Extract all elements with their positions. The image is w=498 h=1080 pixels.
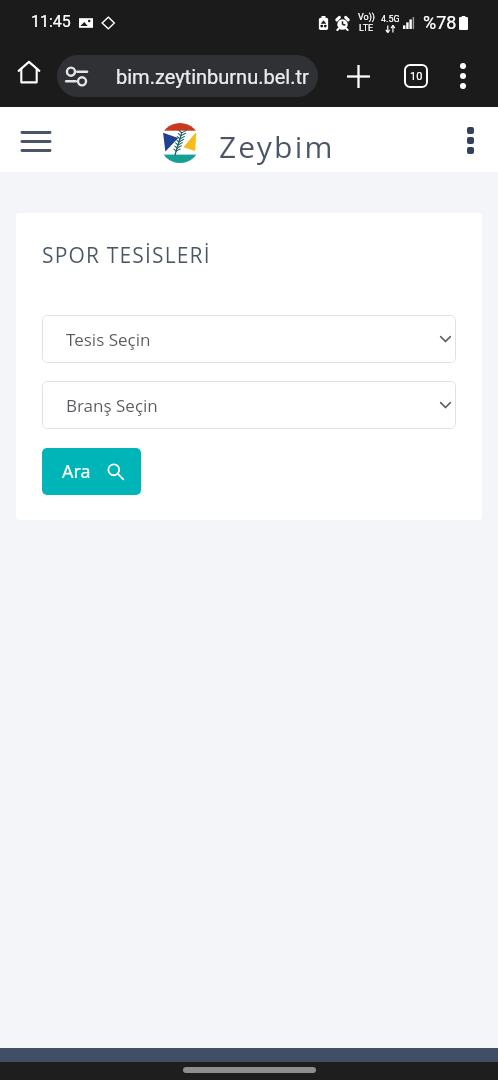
button[interactable]: Tabs [393, 53, 439, 99]
staticText: Ara [62, 459, 91, 484]
staticText: %78 [423, 12, 457, 33]
button[interactable]: More options [440, 53, 486, 99]
button[interactable]: Branş Seçin [42, 381, 456, 429]
staticText: 10 [410, 70, 423, 83]
staticText: 11:45 [31, 12, 71, 31]
button[interactable]: New tab [335, 53, 381, 99]
staticText: bim.zeytinburnu.bel.tr [116, 65, 309, 88]
staticText: Tesis Seçin [66, 328, 151, 351]
staticText: LTE [359, 23, 374, 34]
button[interactable]: Ara [42, 448, 141, 495]
staticText: Vo)) [358, 12, 375, 23]
button[interactable]: Menu [7, 113, 64, 170]
staticText: Branş Seçin [66, 394, 158, 417]
staticText: 4.5G [381, 14, 400, 25]
staticText: SPOR TESİSLERİ [42, 241, 211, 270]
button[interactable]: More [448, 118, 492, 162]
button[interactable]: Home [5, 53, 51, 99]
staticText: Zeybim [219, 126, 335, 167]
button[interactable]: bim.zeytinburnu.bel.tr [57, 55, 318, 97]
button[interactable]: Tesis Seçin [42, 315, 456, 363]
